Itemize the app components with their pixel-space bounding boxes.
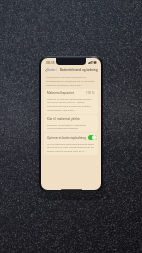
staticText: For at reducere batteriets ældning lærer… xyxy=(47,142,95,153)
staticText: 08:35 xyxy=(46,60,55,65)
staticText: Batteri xyxy=(47,68,57,72)
staticText: Dette er et mål for batterikapaciteten i… xyxy=(47,97,95,112)
button[interactable]: Batteri xyxy=(45,68,58,72)
staticText: Batteriet understøtter i øjeblikket norm… xyxy=(47,123,95,130)
button[interactable]: Maksimal kapacitet xyxy=(47,91,95,95)
staticText: Batteritilstand og ladning xyxy=(60,68,98,72)
staticText: Klar til maksimal ydelse xyxy=(47,117,81,121)
staticText: 100 % xyxy=(86,91,95,95)
staticText: Optimeret batteriopladning xyxy=(47,136,86,140)
staticText: Maksimal kapacitet xyxy=(47,91,75,95)
button[interactable]: Optimeret batteriopladning xyxy=(88,135,97,140)
staticText: Oplysninger om batteritilstand og anbefa… xyxy=(46,75,98,87)
